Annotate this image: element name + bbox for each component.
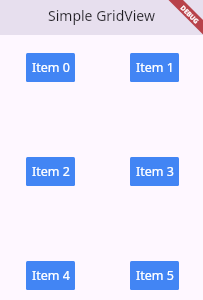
button[interactable]: Item 5 bbox=[130, 261, 179, 290]
staticText: Item 2 bbox=[32, 163, 70, 180]
staticText: DEBUG bbox=[179, 3, 201, 26]
button[interactable]: Item 3 bbox=[130, 157, 179, 186]
staticText: Item 3 bbox=[136, 163, 174, 180]
button[interactable]: Item 2 bbox=[26, 157, 75, 186]
button[interactable]: Item 0 bbox=[26, 53, 75, 82]
button[interactable]: Item 1 bbox=[130, 53, 179, 82]
other: Debug build banner bbox=[162, 0, 203, 42]
button[interactable]: Item 4 bbox=[26, 261, 75, 290]
staticText: Item 0 bbox=[32, 59, 70, 76]
staticText: Item 5 bbox=[136, 267, 174, 284]
staticText: Item 1 bbox=[136, 59, 174, 76]
staticText: Simple GridView bbox=[48, 6, 155, 25]
staticText: Item 4 bbox=[32, 267, 70, 284]
